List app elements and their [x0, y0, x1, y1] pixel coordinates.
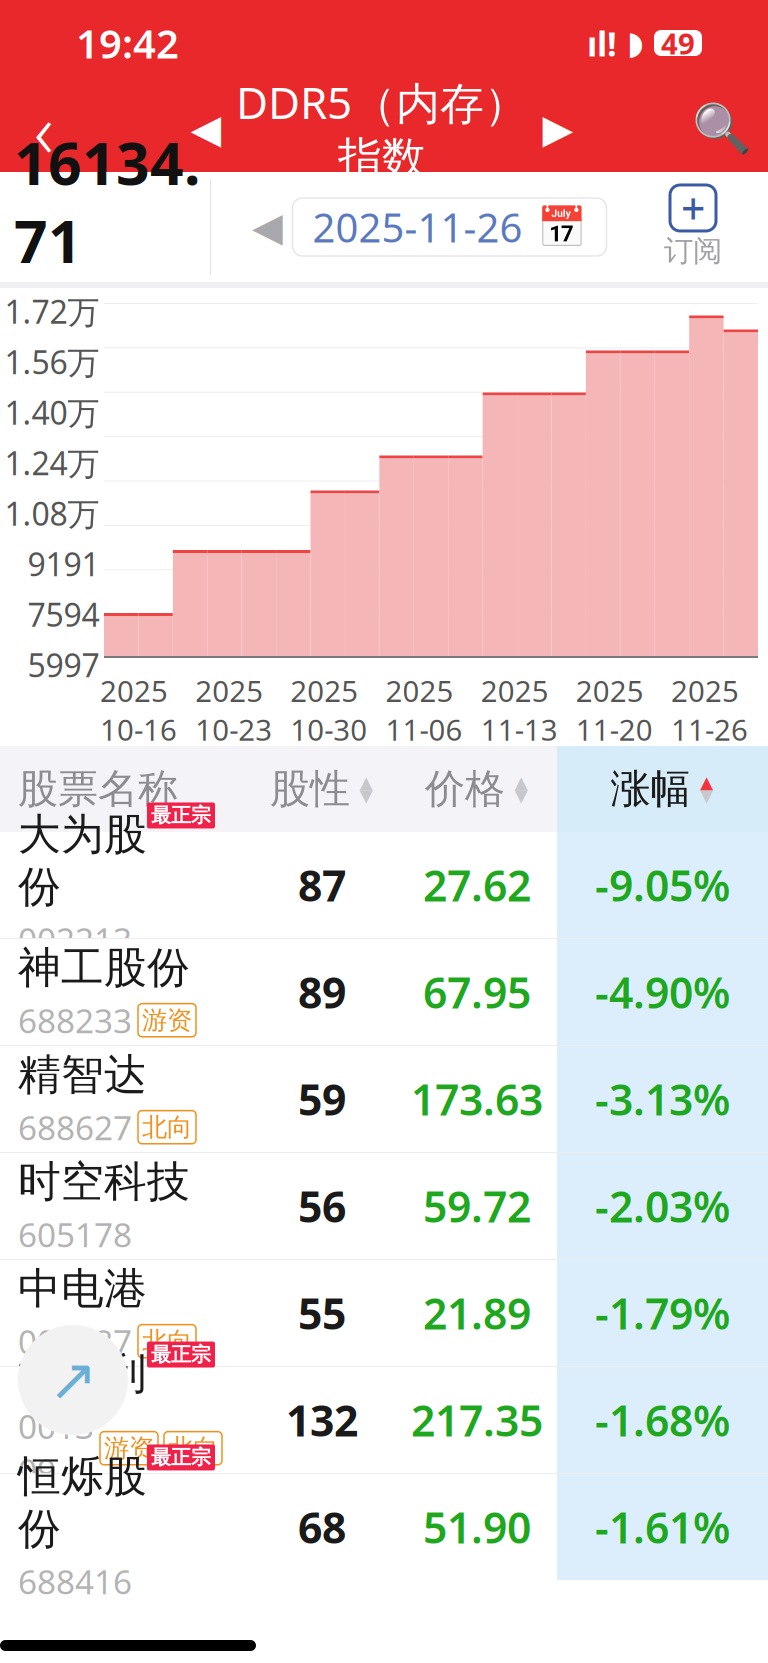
button[interactable]: Previous index [176, 86, 236, 172]
staticText: -- [186, 281, 210, 331]
staticText: 2025-11-26 [312, 200, 522, 253]
staticText: 北向 [168, 1433, 218, 1464]
staticText: 1.24万 [4, 441, 99, 484]
staticText: 游资 [104, 1433, 154, 1464]
staticText: ‹ [34, 79, 54, 179]
staticText: + [681, 180, 705, 236]
staticText: 51.90 [423, 1499, 531, 1555]
staticText: ◀ [190, 106, 221, 152]
staticText: 德明利 [18, 1347, 147, 1400]
staticText: 最正宗 [151, 1445, 211, 1470]
staticText: 订阅 [664, 233, 722, 269]
button[interactable]: + [638, 185, 748, 269]
staticText: 最正宗 [151, 1342, 211, 1367]
staticText: 87 [298, 857, 346, 913]
staticText: 2025 10-30 [290, 671, 367, 749]
staticText: 688627 [18, 1105, 132, 1149]
staticText: 7594 [27, 593, 99, 635]
staticText: 指数 [338, 131, 426, 185]
button[interactable]: Previous day [242, 197, 292, 257]
staticText: 002213 [18, 917, 132, 962]
button[interactable]: 德明利 [0, 1367, 768, 1473]
staticText: 📅 [536, 204, 586, 250]
staticText: 001309 [18, 1404, 94, 1492]
staticText: 精智达 [18, 1049, 147, 1101]
staticText: 股票名称 [18, 764, 178, 813]
staticText: 217.35 [411, 1392, 543, 1448]
staticText: 价格 [425, 764, 505, 813]
staticText: 北向 [142, 1112, 192, 1143]
staticText: 55 [298, 1285, 346, 1341]
staticText: 89 [298, 964, 346, 1020]
staticText: 中电港 [18, 1263, 147, 1315]
staticText: ▲ [514, 773, 527, 792]
staticText: ▲ [359, 773, 372, 792]
staticText: 9191 [27, 542, 99, 585]
staticText: 恒烁股份 [18, 1450, 147, 1555]
staticText: 59 [298, 1071, 346, 1127]
staticText: 56 [298, 1178, 346, 1234]
staticText: 1.56万 [4, 340, 99, 383]
staticText: ▼ [359, 786, 372, 805]
staticText: 67.95 [423, 964, 531, 1020]
button[interactable]: Next index [528, 86, 588, 172]
staticText: 688416 [18, 1559, 132, 1604]
button[interactable]: 精智达 [0, 1046, 768, 1152]
button[interactable]: Share [18, 1325, 128, 1435]
staticText: 132 [286, 1392, 358, 1448]
staticText: 21.89 [423, 1285, 531, 1341]
staticText: 时空科技 [18, 1156, 190, 1208]
staticText: 2025 10-16 [100, 671, 177, 749]
staticText: 最正宗 [151, 803, 211, 828]
staticText: 001287 [18, 1319, 132, 1363]
staticText: -2.03% [595, 1178, 730, 1234]
staticText: -3.13% [595, 1071, 730, 1127]
staticText: 49 [661, 23, 695, 62]
staticText: 大为股份 [18, 808, 147, 913]
staticText: 19:42 [76, 16, 179, 69]
staticText: DDR5（内存） [236, 73, 528, 131]
staticText: ıl! [587, 20, 617, 66]
staticText: -4.90% [595, 964, 730, 1020]
staticText: 游资 [142, 1005, 192, 1036]
staticText: 🔍 [692, 102, 752, 156]
button[interactable]: 2025-11-26 [292, 198, 606, 256]
staticText: 5997 [27, 643, 99, 686]
staticText: 27.62 [423, 857, 531, 913]
staticText: -1.68% [595, 1392, 730, 1448]
staticText: 68 [298, 1499, 346, 1555]
staticText: ◗ [627, 25, 644, 61]
staticText: 涨幅 [610, 764, 690, 813]
staticText: 1.08万 [4, 492, 99, 534]
staticText: 2025 10-23 [195, 671, 272, 749]
staticText: 股性 [270, 764, 350, 813]
staticText: ▲ [700, 773, 713, 792]
staticText: ◀ [252, 204, 283, 250]
staticText: 605178 [18, 1212, 132, 1256]
button[interactable]: 时空科技 [0, 1153, 768, 1259]
staticText: 0.00 [99, 281, 172, 331]
staticText: 2025 11-13 [481, 671, 558, 749]
button[interactable]: Search [676, 86, 768, 172]
staticText: 16134.71 [14, 123, 200, 279]
staticText: 688233 [18, 998, 132, 1042]
button[interactable]: 大为股份 [0, 832, 768, 938]
staticText: ▼ [700, 786, 713, 805]
staticText: 173.63 [411, 1071, 543, 1127]
staticText: 2025 11-06 [385, 671, 462, 749]
staticText: 北向 [142, 1326, 192, 1357]
staticText: 2025 11-20 [576, 671, 653, 749]
staticText: 神工股份 [18, 942, 190, 994]
button[interactable]: 中电港 [0, 1260, 768, 1366]
staticText: 1.40万 [4, 391, 99, 433]
staticText: -9.05% [595, 857, 730, 913]
button[interactable]: Back [0, 86, 88, 172]
button[interactable]: 神工股份 [0, 939, 768, 1045]
staticText: ▶ [542, 106, 573, 152]
staticText: 1.72万 [4, 290, 99, 332]
staticText: ↗ [48, 1347, 97, 1413]
staticText: -1.79% [595, 1285, 730, 1341]
button[interactable]: 恒烁股份 [0, 1474, 768, 1580]
staticText: ▼ [514, 786, 527, 805]
staticText: -1.61% [595, 1499, 730, 1555]
